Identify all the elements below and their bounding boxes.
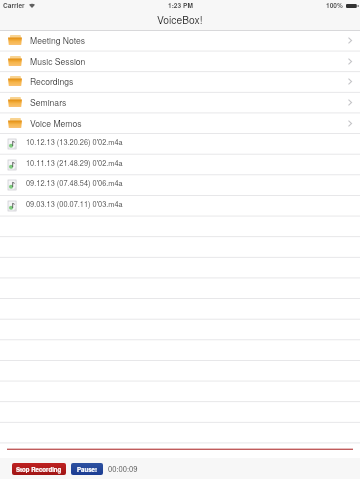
other: Open Seminars (348, 99, 352, 106)
staticText: Recordings (30, 75, 74, 87)
staticText: Carrier (3, 1, 25, 10)
button[interactable]: Stop Recording (12, 463, 66, 475)
staticText: 09.03.13 (00.07.11) 0'03.m4a (26, 199, 123, 210)
button[interactable]: Pause! (71, 463, 103, 475)
staticText: 09.12.13 (07.48.54) 0'06.m4a (26, 178, 123, 189)
other: Open Meeting Notes (348, 37, 352, 44)
staticText: 10.11.13 (21.48.29) 0'02.m4a (26, 158, 123, 169)
other: Open Recordings (348, 78, 352, 85)
staticText: 10.12.13 (13.20.26) 0'02.m4a (26, 137, 123, 148)
button[interactable]: Music Session (0, 51, 360, 72)
other: Open Music Session (348, 58, 352, 65)
button[interactable]: Seminars (0, 92, 360, 113)
staticText: Stop Recording (16, 465, 62, 474)
other: Open Voice Memos (348, 120, 352, 127)
button[interactable]: 09.12.13 (07.48.54) 0'06.m4a (0, 174, 360, 195)
staticText: 00:00:09 (108, 463, 138, 474)
staticText: Music Session (30, 55, 86, 67)
button[interactable]: Recordings (0, 71, 360, 92)
staticText: Pause! (77, 465, 97, 474)
button[interactable]: Meeting Notes (0, 30, 360, 51)
button[interactable]: Voice Memos (0, 113, 360, 134)
staticText: Meeting Notes (30, 34, 86, 46)
staticText: Seminars (30, 96, 67, 108)
staticText: Voice Memos (30, 117, 82, 129)
staticText: VoiceBox! (157, 12, 203, 27)
button[interactable]: 10.11.13 (21.48.29) 0'02.m4a (0, 154, 360, 175)
button[interactable]: 10.12.13 (13.20.26) 0'02.m4a (0, 133, 360, 154)
staticText: 100% (326, 1, 343, 10)
staticText: 1:23 PM (168, 1, 193, 10)
button[interactable]: 09.03.13 (00.07.11) 0'03.m4a (0, 195, 360, 216)
